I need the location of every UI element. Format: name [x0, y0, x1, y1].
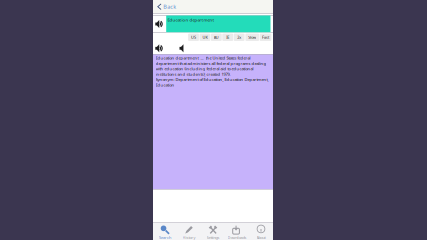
staticText: Downloads [227, 235, 246, 240]
staticText: Back [163, 3, 176, 10]
staticText: History [182, 235, 195, 240]
button[interactable]: Pronounce [153, 15, 166, 32]
button[interactable]: About [249, 223, 273, 240]
staticText: Synonym: Department of Education, Educat… [156, 77, 269, 88]
staticText: AU [214, 35, 219, 40]
button[interactable]: Back [153, 0, 176, 13]
button[interactable]: Fast [260, 33, 271, 41]
button[interactable]: Downloads [225, 223, 249, 240]
button[interactable]: Slow [245, 33, 259, 41]
staticText: Fast [262, 35, 269, 40]
button[interactable]: AU [211, 33, 222, 41]
staticText: Slow [248, 35, 256, 40]
button[interactable]: US [188, 33, 199, 41]
staticText: US [191, 35, 196, 40]
staticText: Education department ... the United Stat… [156, 55, 267, 77]
staticText: 2x [237, 35, 241, 40]
button[interactable]: History [177, 223, 201, 240]
staticText: Settings [206, 235, 219, 240]
button[interactable]: Play [153, 42, 166, 55]
button[interactable]: Settings [201, 223, 225, 240]
button[interactable]: Stop [177, 42, 190, 55]
button[interactable]: Search [153, 223, 177, 240]
staticText: UK [202, 35, 207, 40]
staticText: Education department [167, 17, 214, 23]
button[interactable]: 2x [234, 33, 244, 41]
staticText: IE [226, 35, 229, 40]
button[interactable]: IE [222, 33, 233, 41]
staticText: Search [159, 235, 171, 240]
staticText: About [256, 235, 265, 240]
button[interactable]: UK [199, 33, 210, 41]
